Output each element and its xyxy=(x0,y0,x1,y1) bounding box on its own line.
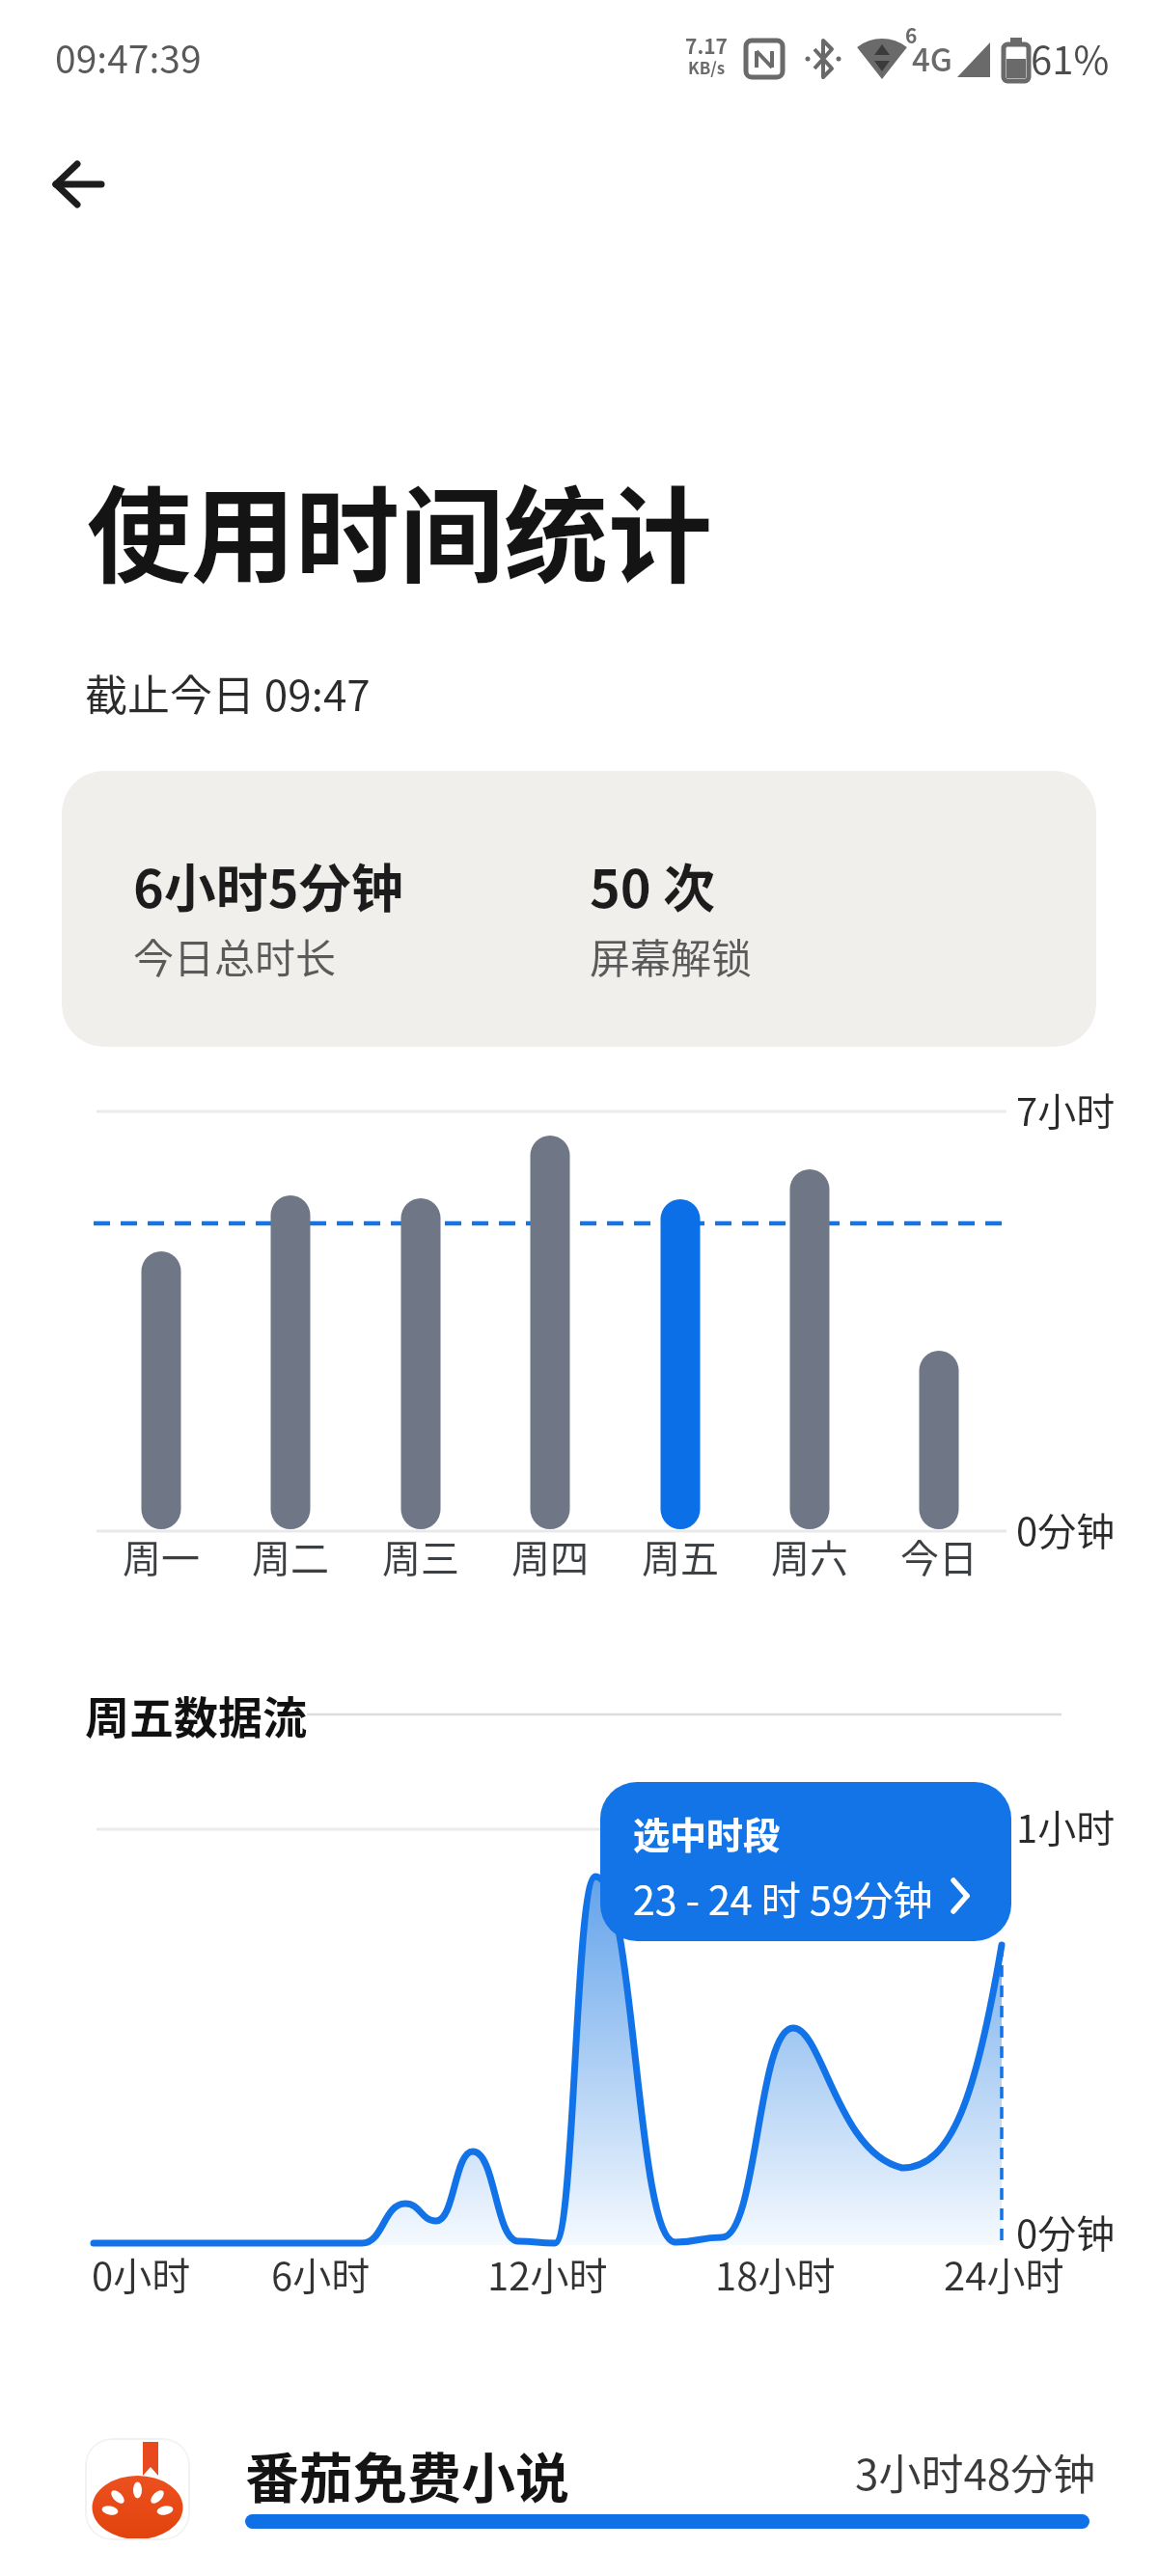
staticText: 6小时5分钟 xyxy=(133,847,403,922)
staticText: 0分钟 xyxy=(1016,2204,1116,2260)
staticText: 24小时 xyxy=(944,2246,1064,2302)
staticText: 50 次 xyxy=(590,847,715,922)
staticText: 0分钟 xyxy=(1016,1501,1116,1557)
staticText: 周四 xyxy=(511,1528,589,1584)
staticText: 周六 xyxy=(771,1528,848,1584)
staticText: 18小时 xyxy=(715,2246,836,2302)
button[interactable]: 选中时段 xyxy=(600,1782,1011,1941)
button[interactable]: 6小时5分钟 xyxy=(62,771,1096,1047)
staticText: 今日 xyxy=(900,1528,978,1584)
staticText: 12小时 xyxy=(487,2246,608,2302)
staticText: 周一 xyxy=(123,1528,200,1584)
staticText: 7.17 xyxy=(685,31,728,60)
staticText: 使用时间统计 xyxy=(87,453,713,604)
staticText: 周三 xyxy=(382,1528,459,1584)
staticText: 截止今日 09:47 xyxy=(85,662,371,724)
button[interactable]: 番茄免费小说 xyxy=(62,2412,1096,2566)
staticText: KB/s xyxy=(688,55,726,79)
staticText: 1小时 xyxy=(1016,1798,1116,1854)
staticText: 6 xyxy=(905,20,918,49)
staticText: 4G xyxy=(912,35,952,81)
staticText: 今日总时长 xyxy=(133,926,337,985)
staticText: 周五数据流 xyxy=(85,1683,307,1747)
staticText: 61% xyxy=(1031,30,1108,86)
staticText: 屏幕解锁 xyxy=(590,926,753,985)
staticText: 23 - 24 时 59分钟 xyxy=(633,1869,933,1926)
staticText: 周二 xyxy=(252,1528,329,1584)
staticText: 6小时 xyxy=(271,2246,371,2302)
button[interactable] xyxy=(35,143,122,226)
staticText: 09:47:39 xyxy=(55,30,202,84)
staticText: 3小时48分钟 xyxy=(855,2441,1096,2503)
staticText: 7小时 xyxy=(1016,1082,1116,1137)
staticText: 周五 xyxy=(642,1528,719,1584)
staticText: 番茄免费小说 xyxy=(245,2435,569,2513)
staticText: 选中时段 xyxy=(633,1806,781,1859)
staticText: 0小时 xyxy=(92,2246,191,2302)
